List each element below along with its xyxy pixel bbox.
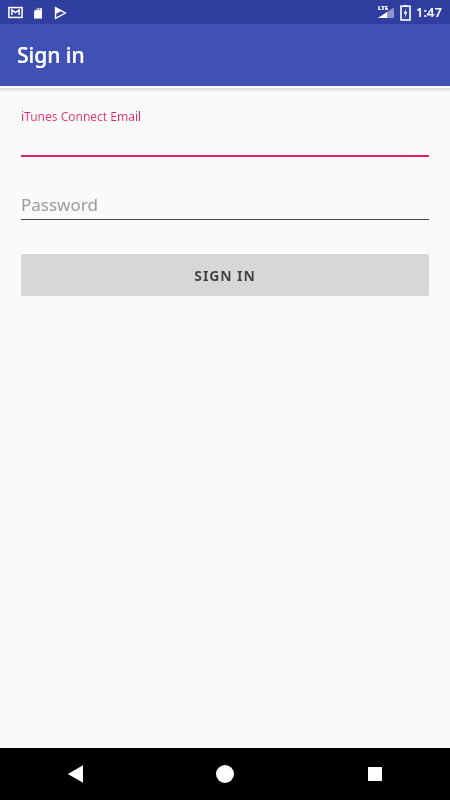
staticText: iTunes Connect Email	[21, 108, 142, 124]
button[interactable]: Home	[150, 748, 300, 800]
staticText: SIGN IN	[194, 266, 256, 285]
button[interactable]: Password	[21, 193, 429, 220]
button[interactable]: SIGN IN	[21, 254, 429, 296]
staticText: Sign in	[17, 41, 85, 70]
button[interactable]: Back	[0, 748, 150, 800]
button[interactable]: iTunes Connect Email	[21, 108, 429, 157]
button[interactable]: Recent apps	[300, 748, 450, 800]
staticText: Password	[21, 193, 98, 216]
staticText: LTE	[378, 4, 389, 12]
staticText: 1:47	[416, 3, 442, 21]
